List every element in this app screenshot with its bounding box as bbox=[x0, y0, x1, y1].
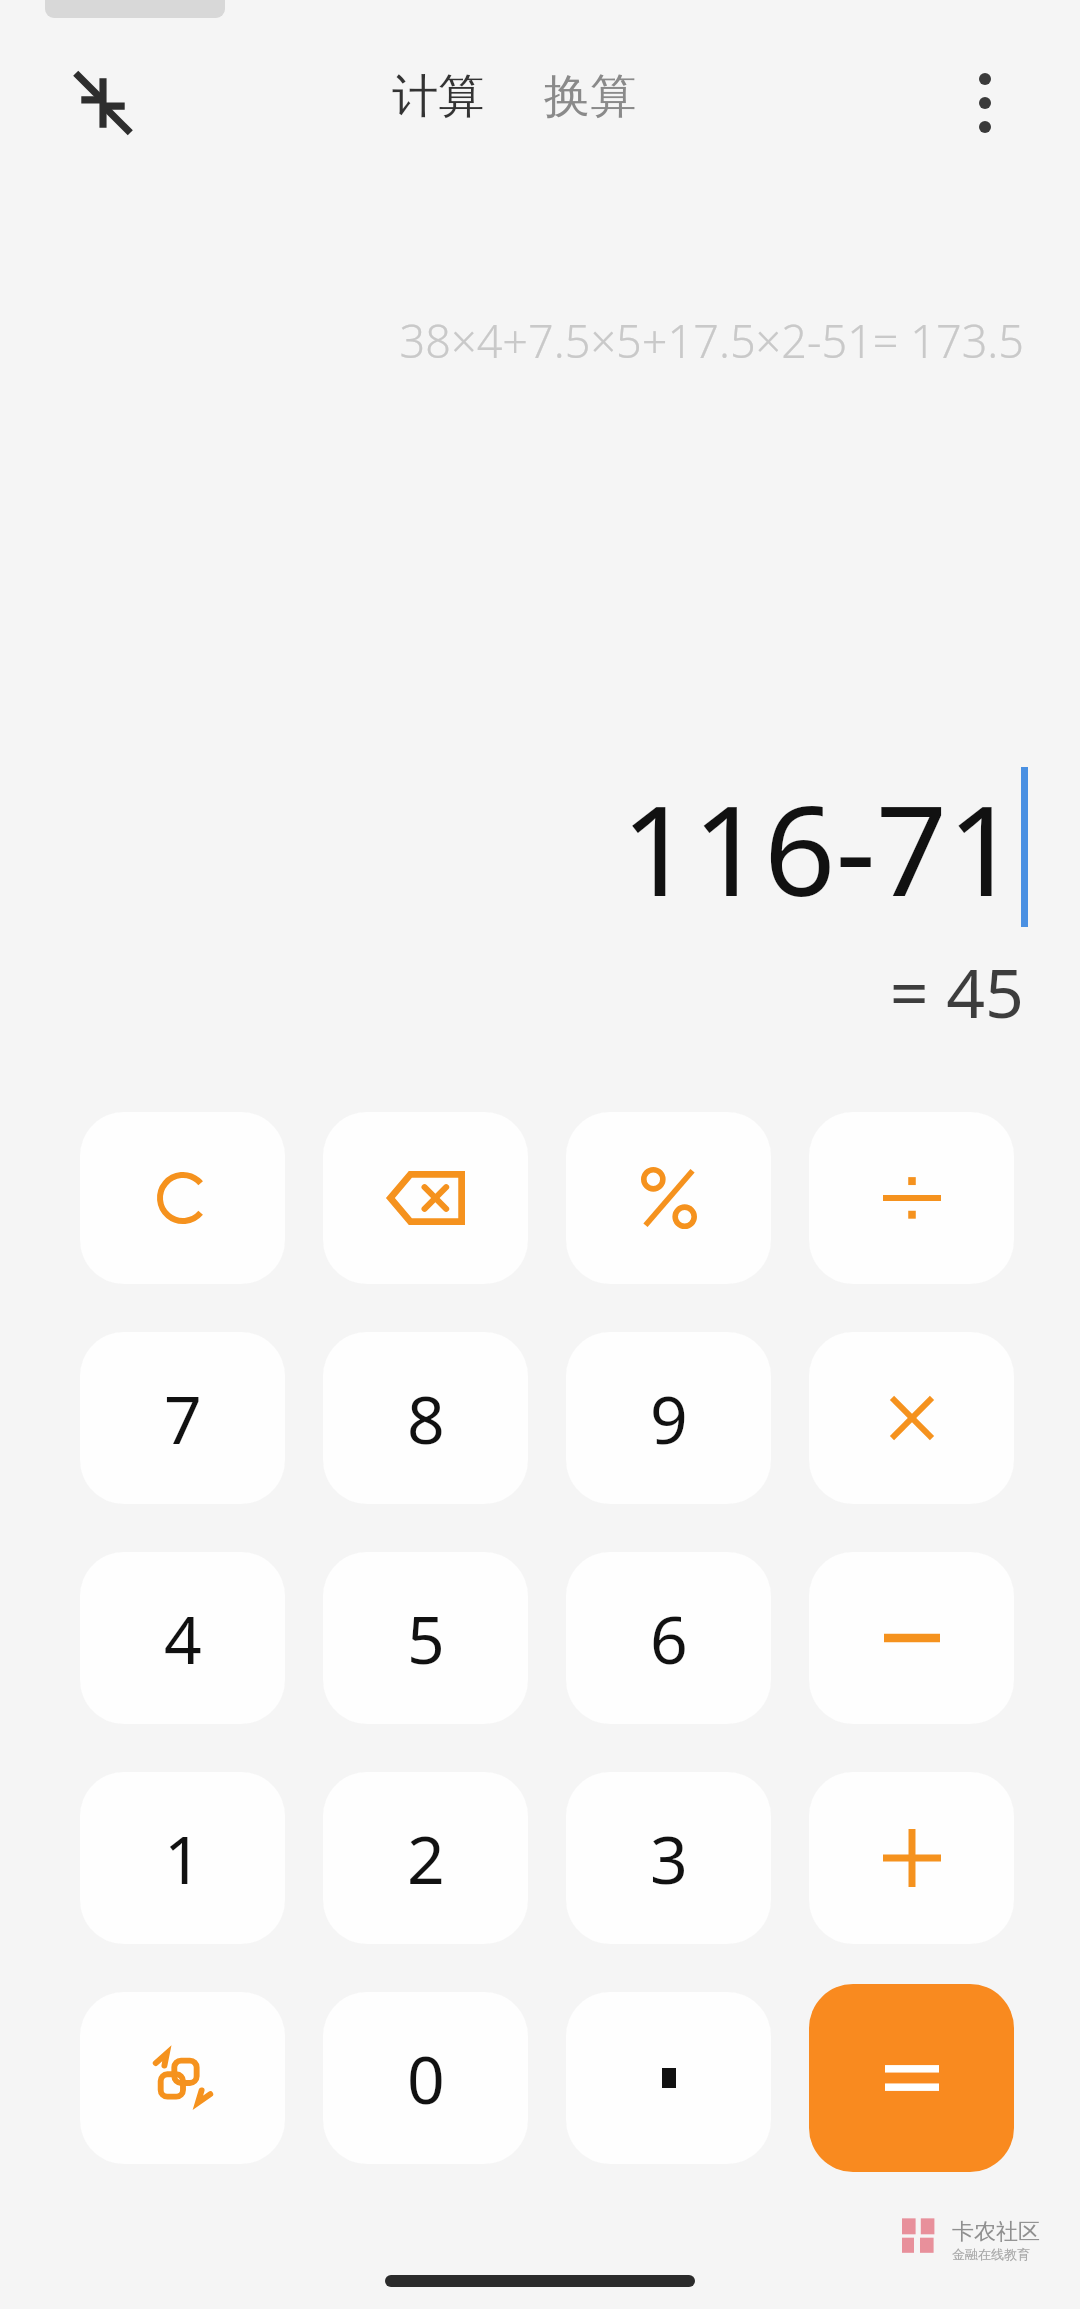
button[interactable]: Multiply bbox=[809, 1332, 1014, 1504]
button[interactable]: 38×4+7.5×5+17.5×2-51= 173.5 bbox=[0, 310, 1024, 371]
staticText: 金融在线教育 bbox=[952, 2246, 1030, 2262]
button[interactable]: 3 bbox=[566, 1772, 771, 1944]
button[interactable]: 0 bbox=[323, 1992, 528, 2164]
staticText: 5 bbox=[407, 1593, 445, 1683]
staticText: 4 bbox=[164, 1593, 202, 1683]
staticText: 1 bbox=[164, 1813, 202, 1903]
button[interactable]: 2 bbox=[323, 1772, 528, 1944]
button[interactable]: 8 bbox=[323, 1332, 528, 1504]
staticText: 7 bbox=[164, 1373, 202, 1463]
button[interactable]: Plus bbox=[809, 1772, 1014, 1944]
button[interactable]: 9 bbox=[566, 1332, 771, 1504]
button[interactable]: Divide bbox=[809, 1112, 1014, 1284]
button[interactable]: 4 bbox=[80, 1552, 285, 1724]
button[interactable]: More options bbox=[930, 48, 1040, 158]
button[interactable]: 6 bbox=[566, 1552, 771, 1724]
button[interactable]: 1 bbox=[80, 1772, 285, 1944]
staticText: 卡农社区 bbox=[952, 2218, 1040, 2246]
staticText: 6 bbox=[650, 1593, 688, 1683]
staticText: 8 bbox=[407, 1373, 445, 1463]
button[interactable]: 7 bbox=[80, 1332, 285, 1504]
staticText: 9 bbox=[650, 1373, 688, 1463]
button[interactable]: Collapse bbox=[48, 48, 158, 158]
staticText: 计算 bbox=[392, 68, 484, 126]
button[interactable]: 5 bbox=[323, 1552, 528, 1724]
staticText: 换算 bbox=[544, 68, 636, 126]
button[interactable] bbox=[80, 1112, 285, 1284]
button[interactable]: 计算 bbox=[388, 60, 488, 134]
button[interactable]: Backspace bbox=[323, 1112, 528, 1284]
button[interactable]: Scientific bbox=[80, 1992, 285, 2164]
staticText: 3 bbox=[650, 1813, 688, 1903]
staticText: 0 bbox=[407, 2033, 445, 2123]
staticText: 38×4+7.5×5+17.5×2-51= 173.5 bbox=[0, 310, 1024, 371]
staticText: = 45 bbox=[0, 945, 1024, 1038]
button[interactable]: Equals bbox=[809, 1984, 1014, 2172]
staticText: 2 bbox=[407, 1813, 445, 1903]
button[interactable]: Percent bbox=[566, 1112, 771, 1284]
staticText: 116-71 bbox=[621, 762, 1019, 932]
button[interactable] bbox=[566, 1992, 771, 2164]
button[interactable]: 换算 bbox=[540, 60, 640, 134]
button[interactable]: Minus bbox=[809, 1552, 1014, 1724]
